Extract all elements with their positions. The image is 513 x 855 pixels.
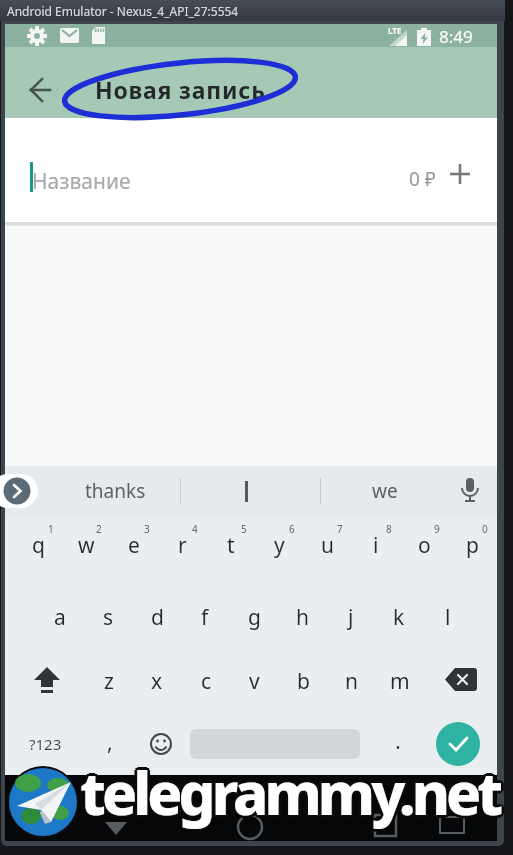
- staticText: 0: [482, 522, 488, 536]
- button[interactable]: [443, 665, 481, 697]
- staticText: LTE: [388, 25, 402, 36]
- button[interactable]: a: [37, 597, 83, 637]
- staticText: o: [418, 531, 431, 560]
- button[interactable]: q: [15, 525, 61, 565]
- button[interactable]: [220, 466, 272, 516]
- button[interactable]: z: [86, 661, 132, 701]
- staticText: Название: [32, 167, 131, 196]
- staticText: 7: [337, 522, 343, 536]
- button[interactable]: n: [328, 661, 374, 701]
- staticText: Новая запись: [95, 74, 266, 105]
- button[interactable]: 5: [234, 521, 254, 537]
- staticText: y: [274, 531, 285, 560]
- staticText: telegrammy.net: [80, 750, 500, 829]
- staticText: i: [373, 531, 379, 560]
- button[interactable]: d: [134, 597, 180, 637]
- staticText: j: [348, 603, 354, 632]
- button[interactable]: e: [111, 525, 157, 565]
- button[interactable]: g: [231, 597, 277, 637]
- button[interactable]: [436, 722, 480, 766]
- staticText: telegrammy.net: [77, 753, 497, 832]
- button[interactable]: s: [85, 597, 131, 637]
- button[interactable]: 7: [330, 521, 350, 537]
- button[interactable]: [148, 731, 174, 757]
- button[interactable]: [21, 70, 61, 110]
- staticText: b: [297, 667, 310, 696]
- button[interactable]: thanks: [55, 467, 175, 515]
- button[interactable]: we: [345, 467, 425, 515]
- staticText: a: [54, 603, 66, 632]
- staticText: s: [103, 603, 114, 632]
- button[interactable]: v: [231, 661, 277, 701]
- staticText: d: [151, 603, 164, 632]
- staticText: telegrammy.net: [80, 753, 500, 832]
- staticText: telegrammy.net: [78, 751, 498, 830]
- button[interactable]: x: [134, 661, 180, 701]
- button[interactable]: [455, 476, 485, 506]
- button[interactable]: 2: [89, 521, 109, 537]
- staticText: l: [445, 603, 451, 632]
- button[interactable]: p: [449, 525, 495, 565]
- staticText: 8: [386, 522, 392, 536]
- button[interactable]: u: [304, 525, 350, 565]
- button[interactable]: [5, 466, 497, 516]
- staticText: w: [78, 531, 95, 560]
- button[interactable]: i: [353, 525, 399, 565]
- staticText: 4: [192, 522, 198, 536]
- button[interactable]: 0: [475, 521, 495, 537]
- staticText: 6: [289, 522, 295, 536]
- button[interactable]: h: [279, 597, 325, 637]
- button[interactable]: ,: [95, 724, 125, 760]
- staticText: v: [249, 667, 260, 696]
- staticText: t: [227, 531, 235, 560]
- staticText: Android Emulator - Nexus_4_API_27:5554: [7, 3, 239, 19]
- staticText: r: [178, 531, 187, 560]
- staticText: 0 ₽: [409, 166, 436, 192]
- staticText: telegrammy.net: [78, 755, 498, 834]
- button[interactable]: ?123: [15, 726, 75, 762]
- button[interactable]: [195, 775, 305, 841]
- button[interactable]: 6: [282, 521, 302, 537]
- staticText: we: [372, 478, 398, 504]
- button[interactable]: w: [63, 525, 109, 565]
- button[interactable]: r: [159, 525, 205, 565]
- staticText: 5: [241, 522, 247, 536]
- button[interactable]: 8: [379, 521, 399, 537]
- button[interactable]: m: [377, 661, 423, 701]
- button[interactable]: j: [328, 597, 374, 637]
- staticText: q: [32, 531, 45, 560]
- staticText: 8:49: [439, 25, 473, 48]
- button[interactable]: 3: [137, 521, 157, 537]
- staticText: 3: [144, 522, 150, 536]
- button[interactable]: k: [376, 597, 422, 637]
- button[interactable]: [65, 775, 175, 841]
- button[interactable]: .: [383, 722, 413, 758]
- staticText: thanks: [85, 478, 146, 504]
- staticText: 2: [96, 522, 102, 536]
- staticText: 9: [434, 522, 440, 536]
- staticText: telegrammy.net: [82, 755, 502, 834]
- staticText: f: [201, 603, 209, 632]
- button[interactable]: 1: [41, 521, 61, 537]
- button[interactable]: o: [401, 525, 447, 565]
- button[interactable]: c: [183, 661, 229, 701]
- staticText: p: [466, 531, 479, 560]
- staticText: ?123: [29, 734, 62, 754]
- button[interactable]: t: [208, 525, 254, 565]
- button[interactable]: f: [182, 597, 228, 637]
- button[interactable]: 4: [185, 521, 205, 537]
- button[interactable]: 9: [427, 521, 447, 537]
- button[interactable]: [325, 775, 435, 841]
- staticText: telegrammy.net: [80, 756, 500, 835]
- button[interactable]: [29, 663, 65, 699]
- staticText: h: [296, 603, 309, 632]
- staticText: m: [390, 667, 410, 696]
- button[interactable]: b: [280, 661, 326, 701]
- staticText: n: [345, 667, 358, 696]
- staticText: u: [321, 531, 334, 560]
- staticText: telegrammy.net: [83, 753, 503, 832]
- button[interactable]: l: [425, 597, 471, 637]
- button[interactable]: y: [256, 525, 302, 565]
- staticText: e: [128, 531, 140, 560]
